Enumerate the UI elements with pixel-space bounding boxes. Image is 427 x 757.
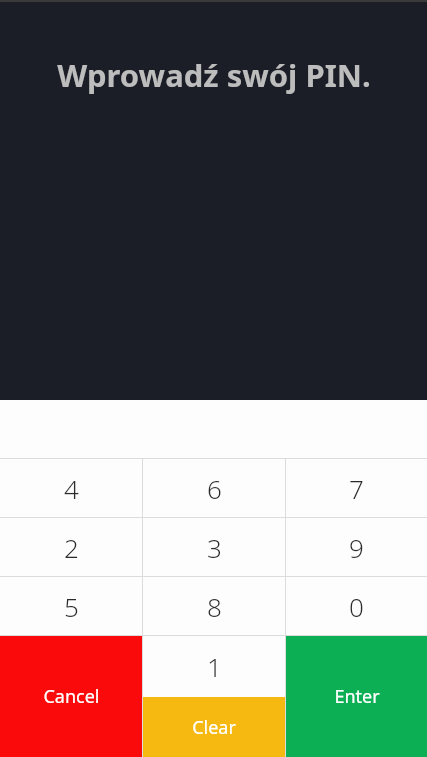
- staticText: Wprowadź swój PIN.: [57, 54, 371, 96]
- button[interactable]: Enter: [286, 636, 427, 757]
- staticText: Enter: [334, 684, 380, 709]
- staticText: Clear: [192, 715, 236, 740]
- staticText: 6: [207, 471, 222, 506]
- staticText: 0: [349, 589, 364, 624]
- staticText: 8: [207, 589, 222, 624]
- button[interactable]: 5: [0, 577, 142, 635]
- staticText: 9: [349, 530, 364, 565]
- button[interactable]: 9: [286, 518, 427, 576]
- button[interactable]: 2: [0, 518, 142, 576]
- staticText: 5: [64, 589, 79, 624]
- staticText: 2: [64, 530, 79, 565]
- button[interactable]: 6: [143, 459, 285, 517]
- button[interactable]: 7: [286, 459, 427, 517]
- button[interactable]: 3: [143, 518, 285, 576]
- button[interactable]: Cancel: [0, 636, 142, 757]
- staticText: 7: [349, 471, 364, 506]
- button[interactable]: 4: [0, 459, 142, 517]
- button[interactable]: Clear: [143, 697, 285, 757]
- staticText: 3: [207, 530, 222, 565]
- staticText: Cancel: [43, 684, 100, 709]
- staticText: 1: [207, 649, 222, 684]
- button[interactable]: 8: [143, 577, 285, 635]
- button[interactable]: 0: [286, 577, 427, 635]
- button[interactable]: 1: [143, 636, 285, 697]
- staticText: 4: [64, 471, 79, 506]
